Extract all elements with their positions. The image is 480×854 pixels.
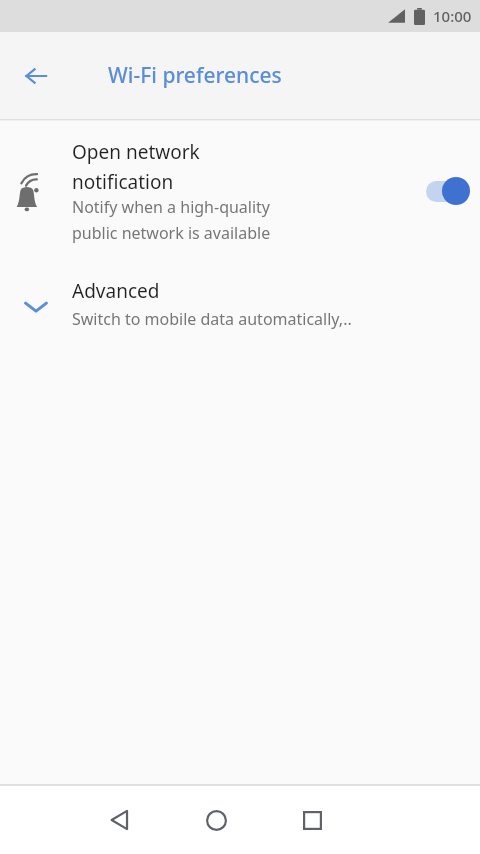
button[interactable]: Open network notification bbox=[0, 121, 480, 261]
staticText: Open network notification bbox=[72, 139, 200, 194]
button[interactable]: Back bbox=[12, 52, 60, 100]
staticText: Advanced bbox=[72, 278, 160, 304]
staticText: Switch to mobile data automatically,.. bbox=[72, 308, 352, 330]
button[interactable]: Home bbox=[168, 786, 264, 854]
staticText: 10:00 bbox=[433, 6, 472, 26]
button[interactable]: Back bbox=[72, 786, 168, 854]
staticText: Wi-Fi preferences bbox=[108, 61, 282, 90]
button[interactable]: Recent apps bbox=[264, 786, 360, 854]
button[interactable]: Open network notification toggle bbox=[416, 121, 480, 261]
button[interactable]: Advanced bbox=[0, 261, 480, 347]
staticText: Notify when a high-quality public networ… bbox=[72, 196, 271, 244]
